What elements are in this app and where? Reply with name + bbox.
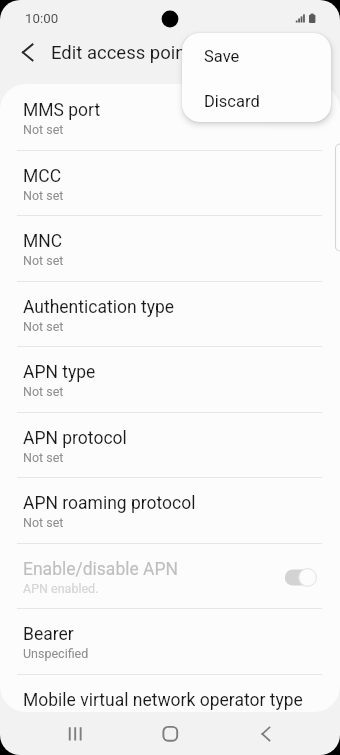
staticText: Not set: [23, 122, 64, 137]
staticText: Not set: [23, 319, 64, 334]
staticText: APN roaming protocol: [23, 493, 323, 514]
button[interactable]: MCC: [0, 150, 340, 216]
button[interactable]: Discard: [182, 78, 331, 122]
staticText: Unspecified: [23, 646, 89, 661]
staticText: Save: [204, 47, 240, 66]
button[interactable]: APN roaming protocol: [0, 477, 340, 543]
button[interactable]: Mobile virtual network operator type: [0, 674, 340, 712]
staticText: MNC: [23, 231, 323, 252]
staticText: Not set: [23, 515, 64, 530]
staticText: Discard: [204, 92, 260, 111]
button[interactable]: Enable/disable APN: [280, 563, 320, 588]
button[interactable]: Home: [140, 711, 200, 755]
button[interactable]: Back: [236, 711, 296, 755]
button[interactable]: Recents: [45, 711, 105, 755]
button[interactable]: MMS port: [0, 84, 340, 150]
staticText: Not set: [23, 188, 64, 203]
staticText: APN type: [23, 362, 323, 383]
staticText: Not set: [23, 253, 64, 268]
staticText: 10:00: [25, 11, 59, 27]
staticText: MCC: [23, 166, 323, 187]
button[interactable]: Save: [182, 33, 331, 78]
staticText: MMS port: [23, 100, 323, 121]
button[interactable]: Enable/disable APN: [0, 543, 340, 609]
staticText: Enable/disable APN: [23, 559, 273, 580]
button[interactable]: APN protocol: [0, 412, 340, 478]
staticText: Bearer: [23, 624, 323, 645]
button[interactable]: Authentication type: [0, 281, 340, 347]
button[interactable]: APN type: [0, 346, 340, 412]
staticText: Not set: [23, 384, 64, 399]
button[interactable]: MNC: [0, 215, 340, 281]
staticText: Mobile virtual network operator type: [23, 690, 323, 711]
staticText: APN protocol: [23, 428, 323, 449]
staticText: APN enabled.: [23, 581, 99, 596]
staticText: Authentication type: [23, 297, 323, 318]
staticText: Edit access point: [51, 42, 192, 64]
button[interactable]: Navigate up: [4, 36, 51, 76]
button[interactable]: Bearer: [0, 608, 340, 674]
staticText: Not set: [23, 450, 64, 465]
